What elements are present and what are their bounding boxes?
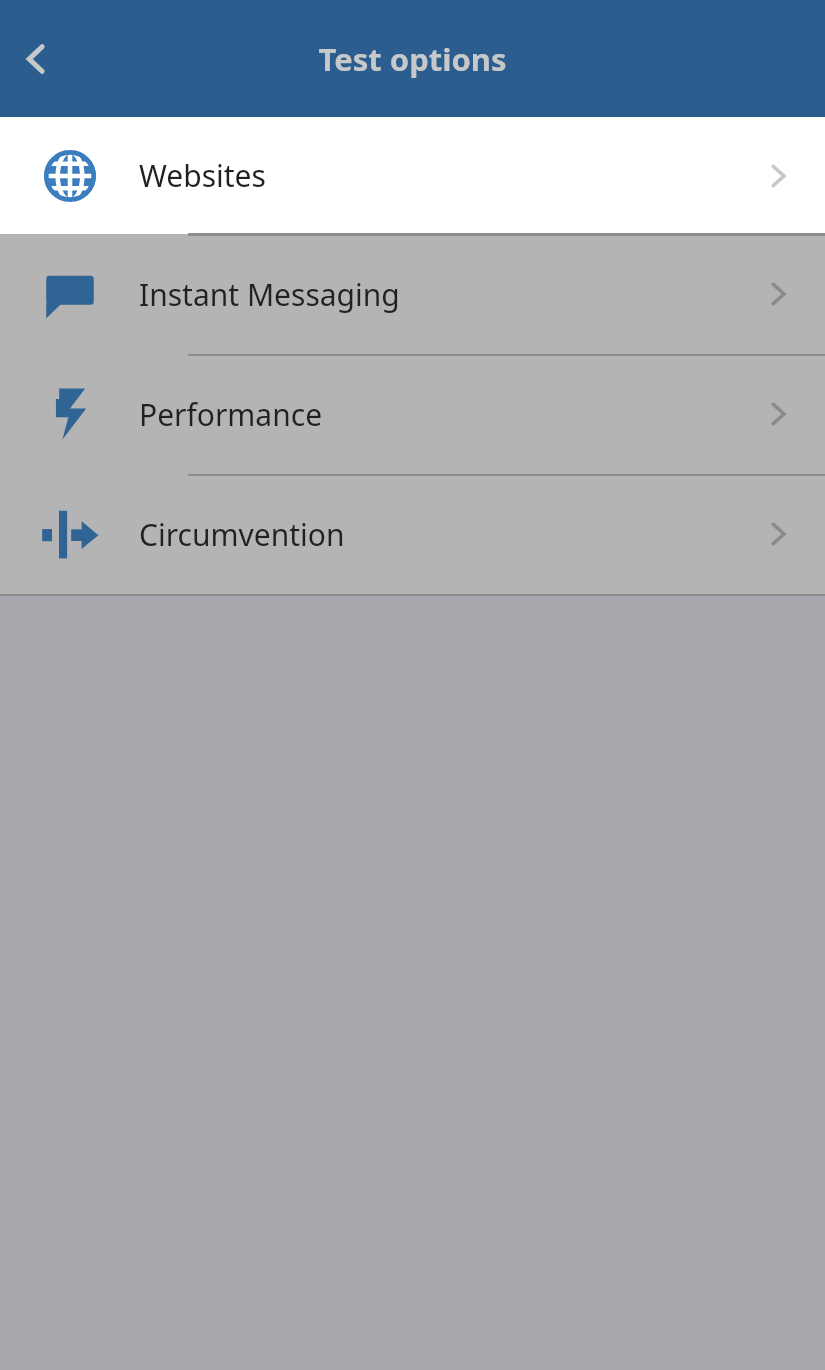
button[interactable]: Circumvention <box>0 474 825 594</box>
button[interactable]: Back <box>4 27 68 91</box>
staticText: Websites <box>139 155 730 196</box>
staticText: Circumvention <box>139 514 730 555</box>
staticText: Test options <box>318 38 507 80</box>
staticText: Performance <box>139 394 730 435</box>
staticText: Instant Messaging <box>139 274 730 315</box>
button[interactable]: Performance <box>0 354 825 474</box>
button[interactable]: Websites <box>0 117 825 234</box>
button[interactable]: Instant Messaging <box>0 234 825 354</box>
